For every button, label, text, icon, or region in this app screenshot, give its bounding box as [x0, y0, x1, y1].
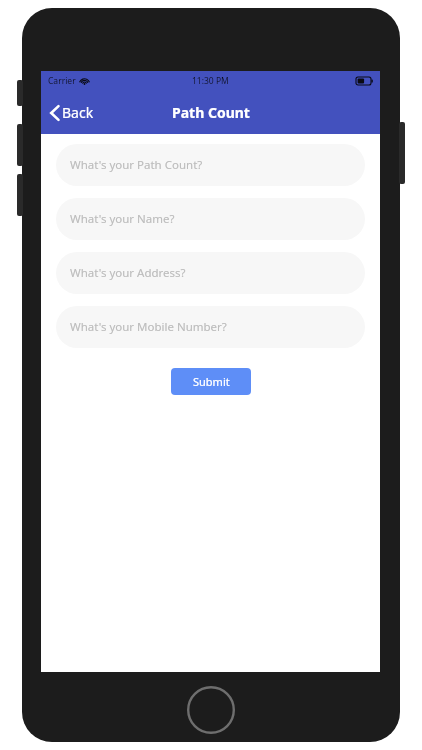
staticText: 11:30 PM [192, 75, 229, 87]
staticText: What's your Address? [70, 265, 186, 281]
staticText: Back [62, 103, 94, 122]
staticText: Submit [193, 374, 230, 389]
button[interactable]: What's your Name? [56, 198, 365, 240]
button[interactable]: Submit [171, 368, 251, 395]
button[interactable]: What's your Address? [56, 252, 365, 294]
button[interactable]: What's your Mobile Number? [56, 306, 365, 348]
staticText: Path Count [172, 103, 250, 122]
staticText: What's your Mobile Number? [70, 319, 227, 335]
button[interactable]: Back [47, 99, 97, 126]
staticText: What's your Path Count? [70, 157, 203, 173]
button[interactable]: What's your Path Count? [56, 144, 365, 186]
staticText: Carrier [48, 75, 76, 87]
staticText: What's your Name? [70, 211, 175, 227]
